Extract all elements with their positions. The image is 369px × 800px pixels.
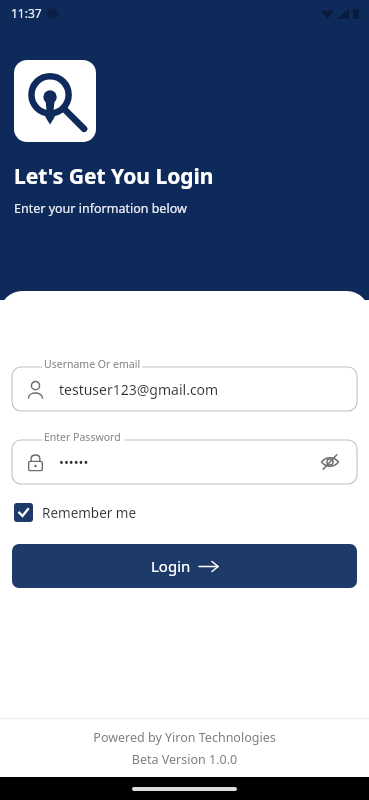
- button[interactable]: Remember me: [13, 501, 138, 524]
- staticText: Enter Password: [44, 430, 121, 444]
- staticText: Remember me: [42, 504, 137, 522]
- staticText: Username Or email: [44, 357, 141, 371]
- staticText: Beta Version 1.0.0: [0, 751, 369, 768]
- staticText: Login: [151, 556, 191, 576]
- button[interactable]: Username Or email: [12, 357, 357, 411]
- button[interactable]: Login: [12, 544, 357, 588]
- staticText: ••••••: [59, 453, 89, 471]
- staticText: Powered by Yiron Technologies: [0, 729, 369, 746]
- staticText: testuser123@gmail.com: [59, 380, 219, 399]
- staticText: 11:37: [11, 5, 42, 21]
- staticText: Enter your information below: [14, 200, 187, 217]
- button[interactable]: Enter Password: [12, 430, 357, 484]
- button[interactable]: Show password: [317, 449, 343, 475]
- staticText: Let's Get You Login: [14, 162, 214, 191]
